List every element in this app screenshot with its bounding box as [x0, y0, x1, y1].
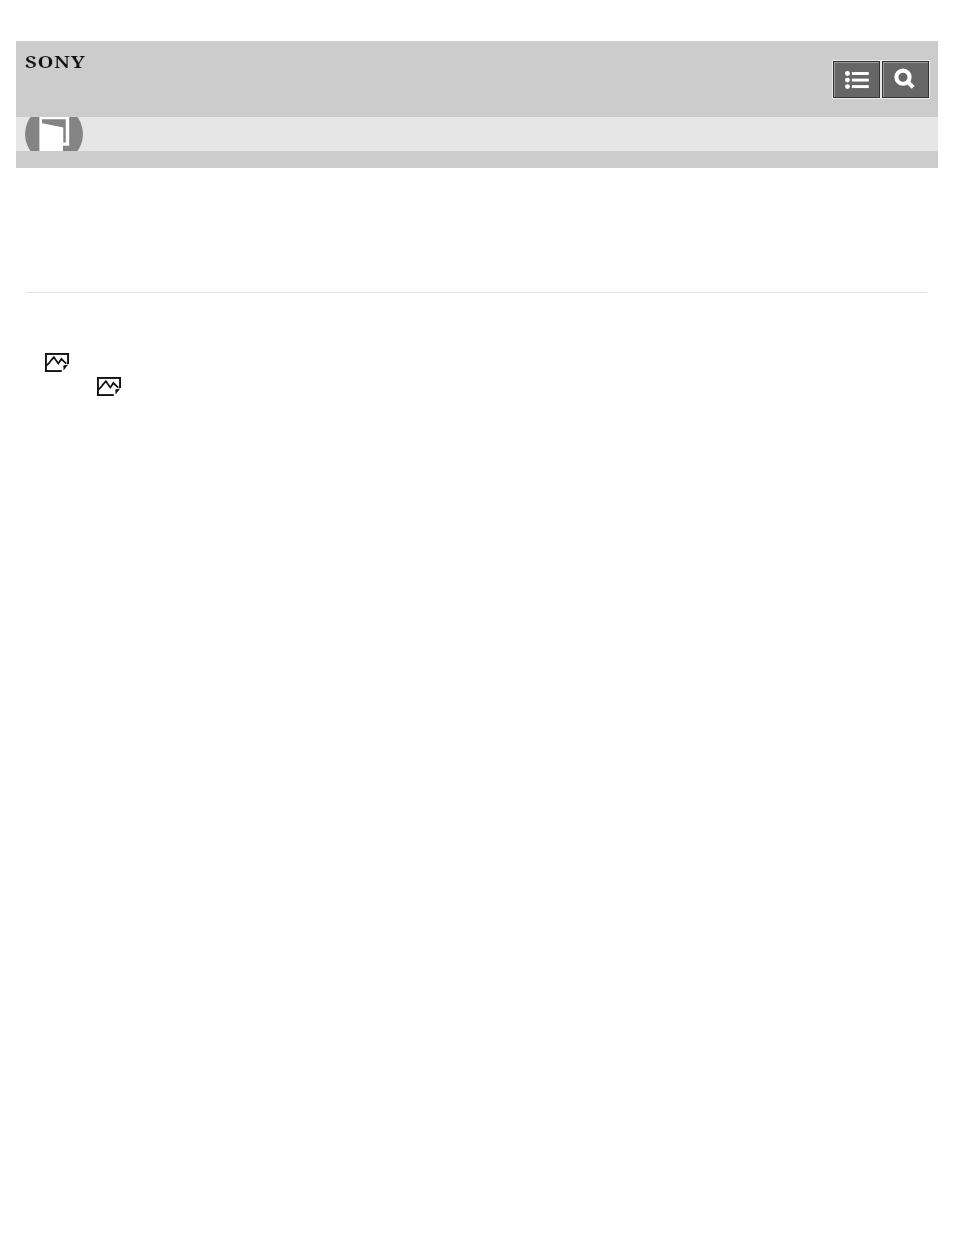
button[interactable]: SONY: [25, 51, 89, 69]
button[interactable]: Help Guide home: [16, 117, 83, 151]
button[interactable]: Search: [884, 63, 928, 97]
button[interactable]: Menu: [835, 63, 879, 97]
staticText: SONY: [25, 51, 86, 69]
